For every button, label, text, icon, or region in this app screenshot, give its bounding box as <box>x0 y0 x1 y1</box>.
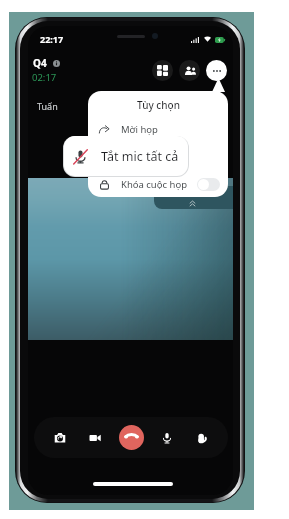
button[interactable]: Q4 <box>33 56 60 70</box>
other: Expand participants <box>189 200 196 207</box>
staticText: Tùy chọn <box>137 98 180 112</box>
button[interactable]: Tắt mic tất cả <box>64 136 188 176</box>
staticText: Q4 <box>33 56 47 70</box>
other: Meeting info <box>53 60 60 67</box>
staticText: Tuấn <box>37 100 58 112</box>
button[interactable]: Mute microphone <box>155 426 179 450</box>
staticText: 22:17 <box>40 33 64 45</box>
staticText: Mời họp <box>121 123 158 136</box>
button[interactable]: Mời họp <box>99 118 220 140</box>
button[interactable]: Change layout <box>152 60 173 81</box>
button[interactable]: More options <box>206 60 227 81</box>
button[interactable]: Turn off camera <box>83 426 107 450</box>
button[interactable]: Khóa cuộc họp <box>99 173 220 195</box>
button[interactable]: Expand participants <box>154 186 233 209</box>
staticText: Tắt mic tất cả <box>101 148 179 165</box>
button[interactable]: Raise hand <box>190 426 214 450</box>
button[interactable]: End call <box>119 425 144 450</box>
button[interactable]: Add people <box>179 60 200 81</box>
staticText: Khóa cuộc họp <box>121 178 187 191</box>
staticText: 02:17 <box>32 71 57 84</box>
button[interactable]: Flip camera <box>48 426 72 450</box>
